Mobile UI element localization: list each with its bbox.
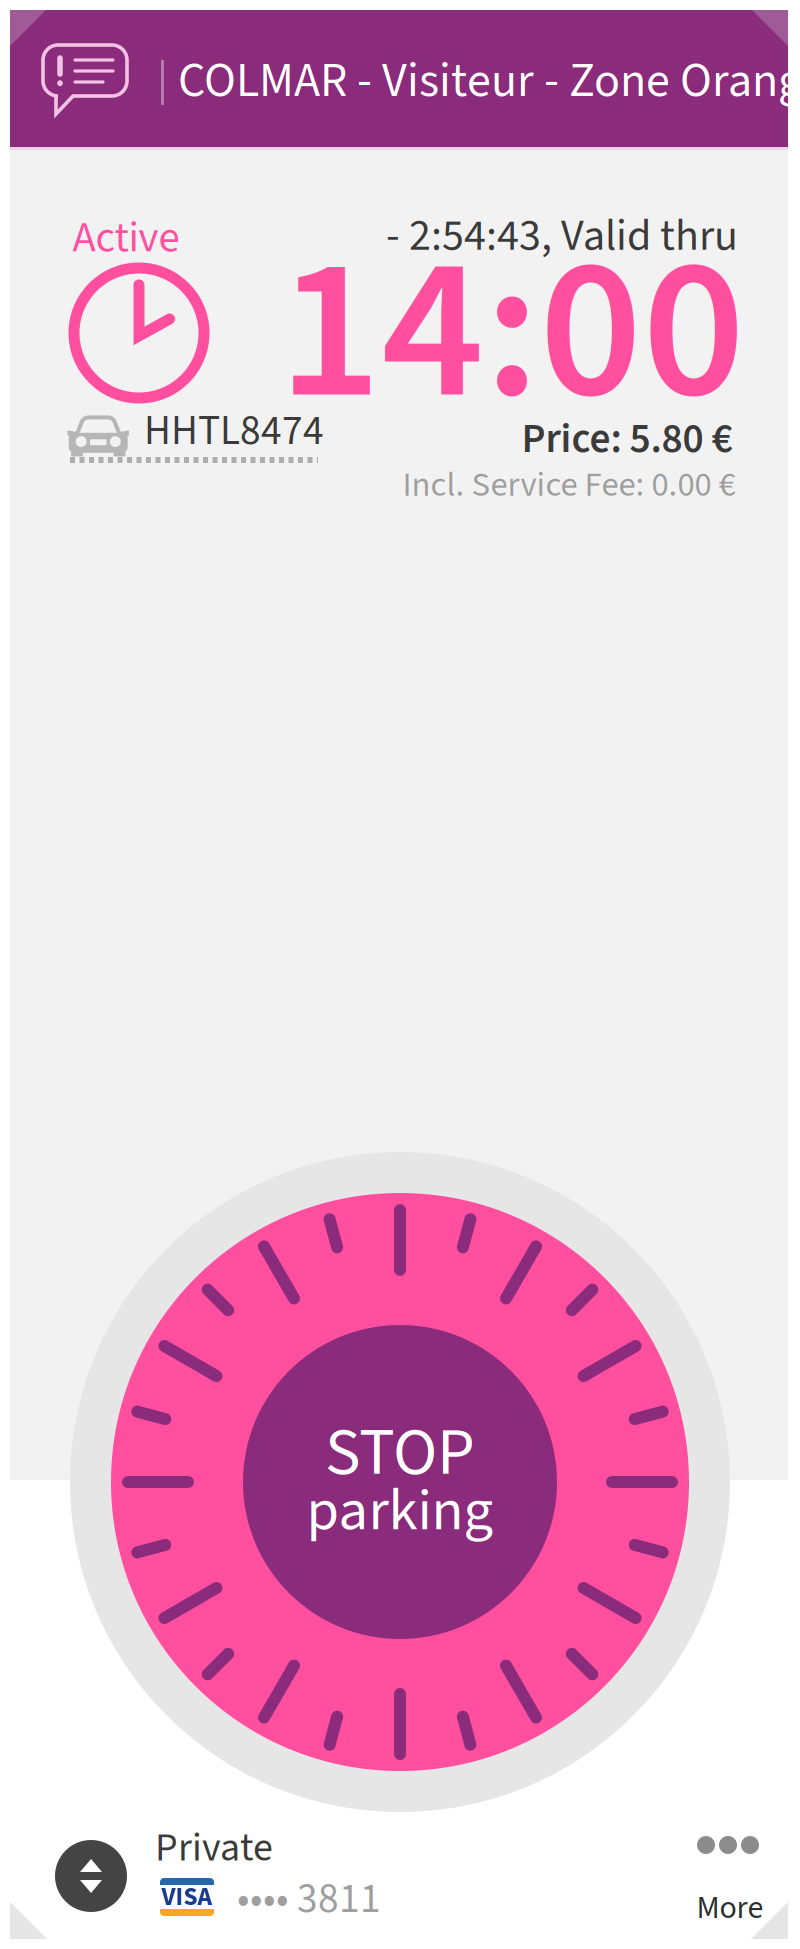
button[interactable]: STOP [0, 0, 800, 1949]
staticText: STOP [325, 1405, 475, 1500]
staticText: •••• 3811 [237, 1870, 381, 1928]
staticText: Price: 5.80 € [521, 410, 732, 468]
staticText: Incl. Service Fee: 0.00 € [402, 460, 735, 510]
button[interactable]: Information [0, 0, 800, 1949]
button[interactable]: More [0, 0, 800, 1949]
staticText: parking [306, 1469, 493, 1553]
staticText: Private [155, 1819, 273, 1876]
staticText: COLMAR - Visiteur - Zone Orange [178, 47, 800, 115]
staticText: Active [72, 208, 179, 268]
staticText: - 2:54:43, Valid thru [386, 205, 738, 267]
button[interactable]: Private [0, 0, 800, 1949]
staticText: 14:00 [278, 190, 745, 474]
staticText: More [696, 1885, 763, 1931]
staticText: HHTL8474 [144, 402, 324, 460]
button[interactable]: Change payment method [0, 0, 800, 1949]
staticText: VISA [161, 1879, 212, 1915]
